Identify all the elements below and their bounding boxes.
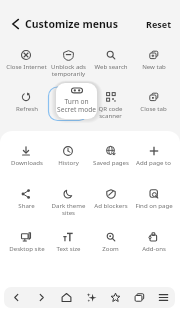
staticText: Add page to (136, 158, 171, 166)
staticText: Ad blockers (94, 201, 128, 209)
button[interactable]: Add page to (132, 145, 175, 166)
staticText: QR code scanner (88, 104, 133, 119)
button[interactable]: Desktop site (5, 231, 47, 252)
button[interactable]: Turn on Secret mode (56, 83, 97, 119)
staticText: Close Internet (6, 62, 47, 70)
staticText: Text size (56, 244, 81, 252)
button[interactable]: Bookmarks (103, 287, 127, 308)
button[interactable]: Dark theme sites (47, 188, 89, 216)
button[interactable]: Unblock ads temporarily (47, 49, 89, 77)
staticText: Desktop site (9, 244, 45, 252)
button[interactable]: Tabs (127, 287, 151, 308)
button[interactable]: History (47, 145, 89, 166)
button[interactable]: Reset (141, 13, 177, 35)
button[interactable]: Text size (47, 231, 89, 252)
staticText: Customize menus (25, 17, 118, 31)
button[interactable]: Back (6, 14, 25, 33)
staticText: Add-ons (142, 244, 166, 252)
staticText: Unblock ads temporarily (46, 62, 91, 77)
staticText: Saved pages (93, 158, 129, 166)
button[interactable]: Web search (89, 49, 132, 70)
button[interactable]: Home (54, 287, 79, 308)
button[interactable]: Close Internet (5, 49, 47, 70)
button[interactable]: Forward (29, 287, 54, 308)
button[interactable]: QR code scanner (89, 91, 132, 119)
staticText: Turn on Secret mode (56, 97, 97, 114)
staticText: Zoom (102, 244, 119, 252)
staticText: Web search (94, 62, 128, 70)
button[interactable]: Saved pages (89, 145, 132, 166)
staticText: History (58, 158, 79, 166)
staticText: Reset (146, 18, 172, 30)
staticText: Find on page (135, 201, 173, 209)
button[interactable]: Refresh (5, 91, 47, 112)
button[interactable]: Zoom (89, 231, 132, 252)
staticText: New tab (142, 62, 166, 70)
staticText: Refresh (16, 104, 38, 112)
button[interactable]: AI (79, 287, 103, 308)
staticText: Close tab (140, 104, 167, 112)
button[interactable]: Add-ons (132, 231, 175, 252)
button[interactable]: Share (5, 188, 47, 209)
button[interactable]: Downloads (5, 145, 47, 166)
button[interactable]: Close tab (132, 91, 175, 112)
staticText: Share (18, 201, 35, 209)
button[interactable]: New tab (132, 49, 175, 70)
staticText: Downloads (11, 158, 43, 166)
staticText: Dark theme sites (46, 201, 91, 216)
button[interactable]: Back (4, 287, 29, 308)
button[interactable]: Find on page (132, 188, 175, 209)
button[interactable]: Ad blockers (89, 188, 132, 209)
button[interactable]: Menu (151, 287, 175, 308)
